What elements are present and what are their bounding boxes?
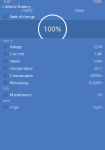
button[interactable]: Voltage xyxy=(0,43,105,50)
button[interactable]: Power xyxy=(0,57,105,65)
staticText: Temperature xyxy=(10,65,33,71)
staticText: 60W xyxy=(94,58,102,64)
staticText: ‹ xyxy=(2,3,4,10)
staticText: Current xyxy=(10,51,24,56)
staticText: 24ºc xyxy=(94,65,102,71)
button[interactable]: ‹ xyxy=(2,3,31,10)
staticText: 12.4V xyxy=(93,44,102,49)
staticText: Info xyxy=(3,87,9,90)
staticText: OK xyxy=(97,92,102,97)
staticText: Remaining xyxy=(10,80,28,85)
staticText: Open xyxy=(93,104,102,110)
staticText: Vehicle Battery xyxy=(5,4,31,9)
staticText: Consumption xyxy=(10,73,33,78)
button[interactable]: Trips xyxy=(0,103,105,111)
staticText: State of charge xyxy=(10,14,35,19)
staticText: 100% xyxy=(93,0,101,4)
staticText: Battery xyxy=(3,39,12,42)
button[interactable]: Maintenance xyxy=(0,91,105,98)
staticText: 8.2kWh xyxy=(89,80,102,85)
staticText: 9:41 xyxy=(4,0,11,4)
staticText: Trips xyxy=(10,104,19,110)
staticText: Power xyxy=(10,58,21,64)
staticText: More xyxy=(3,99,10,103)
button[interactable]: Remaining xyxy=(0,79,105,86)
staticText: CHARGE xyxy=(21,9,32,13)
button[interactable]: Current xyxy=(0,50,105,57)
button[interactable]: State of charge xyxy=(0,13,105,20)
button[interactable]: Consumption xyxy=(0,72,105,79)
staticText: Voltage xyxy=(10,44,22,49)
button[interactable]: Temperature xyxy=(0,65,105,72)
staticText: 1.4A xyxy=(94,51,102,56)
staticText: 265Wh xyxy=(90,73,102,78)
staticText: RANGE xyxy=(75,9,84,13)
staticText: Maintenance xyxy=(10,92,32,97)
staticText: 100% xyxy=(43,25,61,33)
